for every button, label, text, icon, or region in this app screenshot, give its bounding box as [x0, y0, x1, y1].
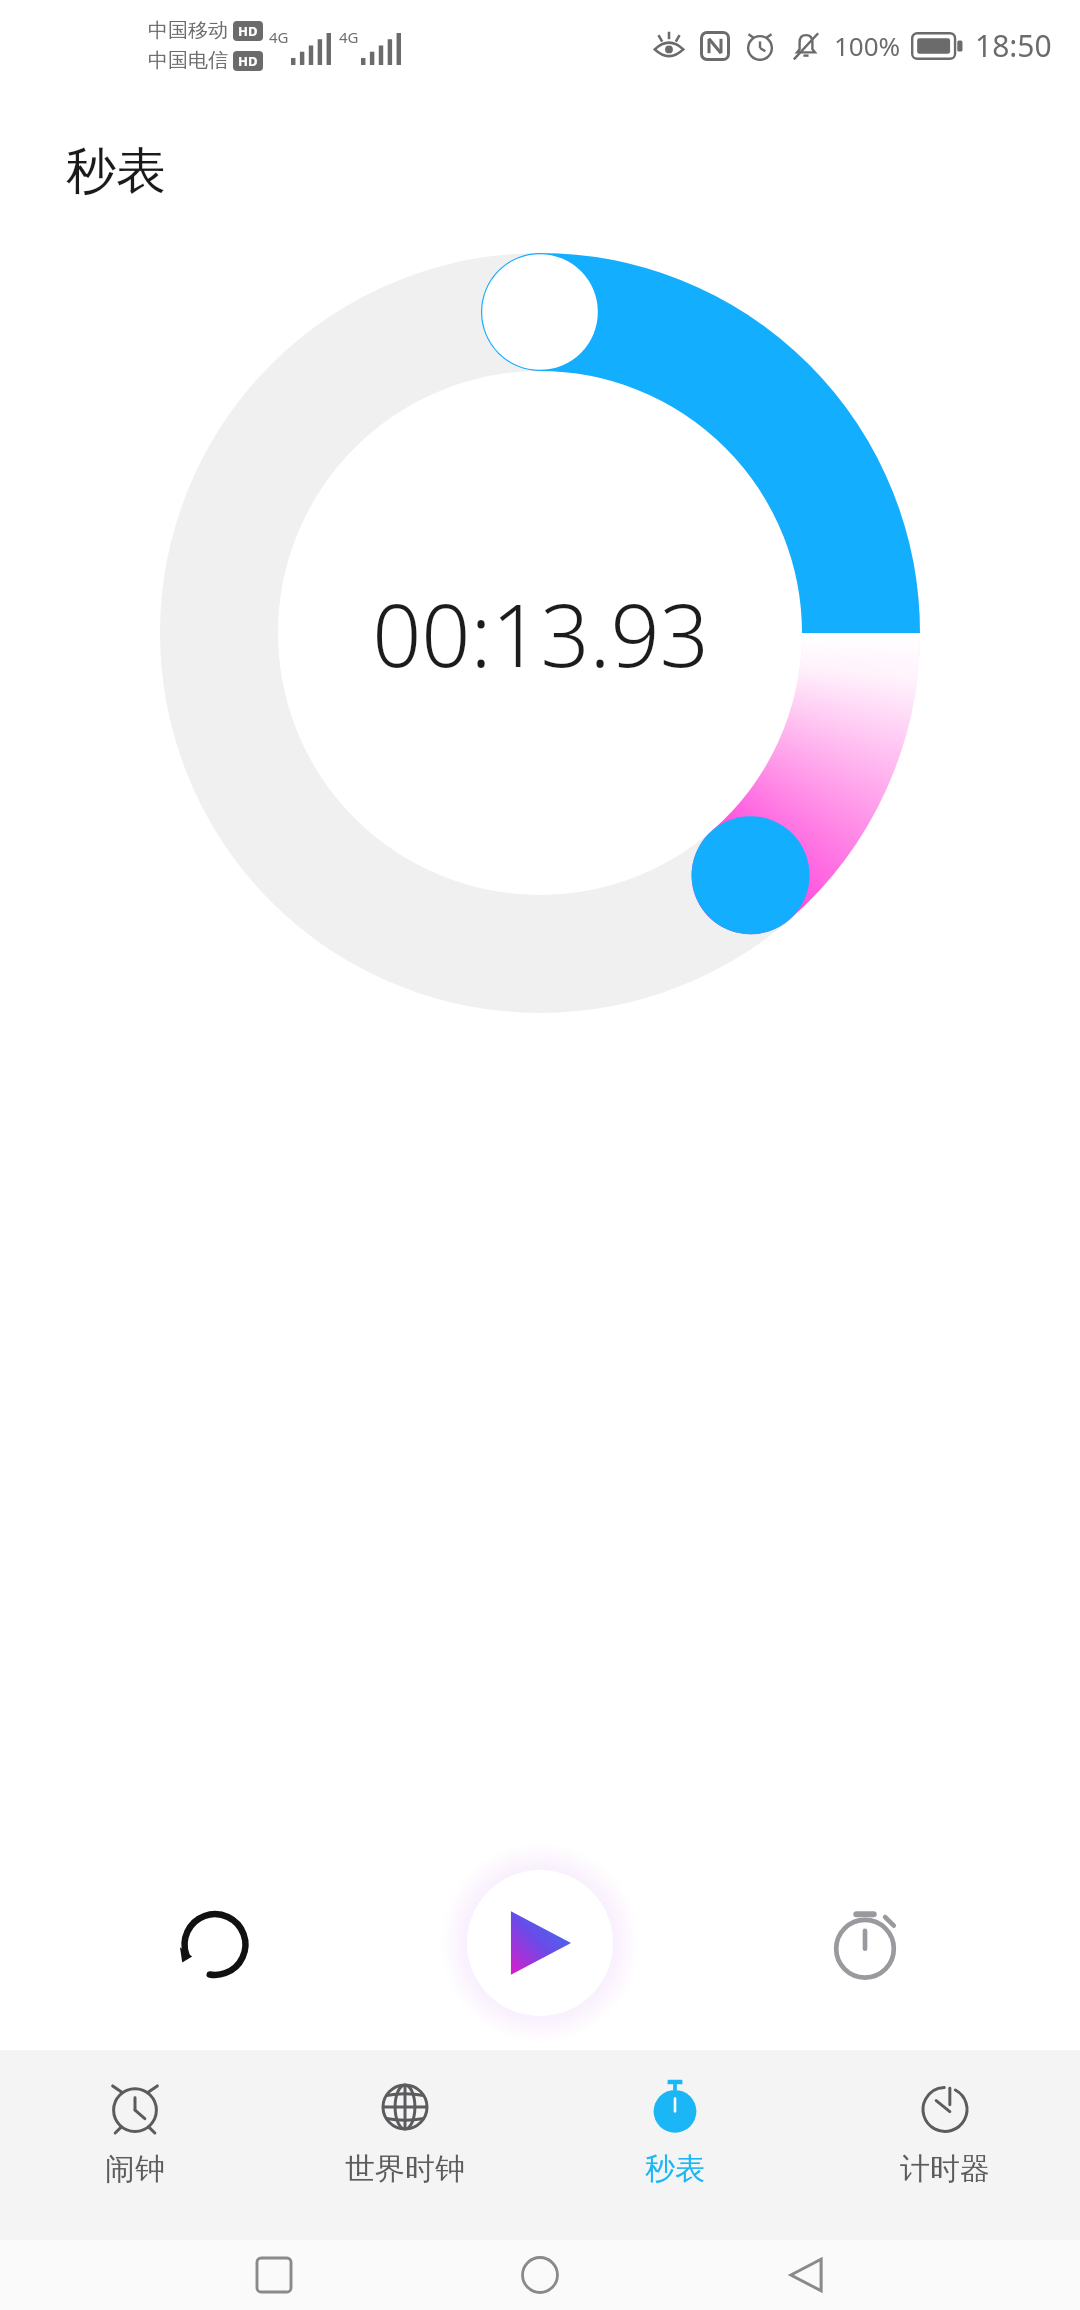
button[interactable]: Lap [800, 1878, 930, 2008]
staticText: 秒表 [645, 2150, 705, 2188]
staticText: HD [238, 52, 258, 70]
staticText: 秒表 [66, 140, 166, 203]
button[interactable]: 世界时钟 [270, 2050, 540, 2240]
staticText: 4G [339, 27, 359, 47]
staticText: 中国电信 [148, 48, 228, 73]
staticText: 闹钟 [105, 2150, 165, 2188]
button[interactable]: 闹钟 [0, 2050, 270, 2240]
button[interactable]: Reset [150, 1878, 280, 2008]
staticText: HD [238, 22, 258, 40]
button[interactable]: Back [767, 2240, 845, 2310]
button[interactable]: 计时器 [810, 2050, 1080, 2240]
staticText: 100% [834, 28, 901, 63]
button[interactable]: Start [467, 1870, 613, 2016]
staticText: 00:13.93 [372, 575, 709, 692]
button[interactable]: Home [501, 2240, 579, 2310]
button[interactable]: 秒表 [540, 2050, 810, 2240]
staticText: 世界时钟 [345, 2150, 465, 2188]
staticText: 计时器 [900, 2150, 990, 2188]
staticText: 4G [269, 27, 289, 47]
staticText: 中国移动 [148, 18, 228, 43]
button[interactable]: Recents [235, 2240, 313, 2310]
staticText: 18:50 [975, 25, 1052, 66]
